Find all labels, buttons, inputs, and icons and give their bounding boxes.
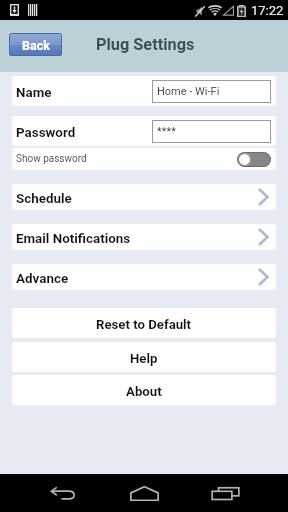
button[interactable]: Schedule xyxy=(12,184,276,210)
staticText: Home - Wi-Fi xyxy=(157,85,220,98)
staticText: Password xyxy=(16,125,76,141)
staticText: **** xyxy=(157,125,176,138)
button[interactable]: Back xyxy=(9,33,62,56)
button[interactable]: Email Notifications xyxy=(12,224,276,250)
staticText: Reset to Default xyxy=(96,317,192,332)
button[interactable]: Back xyxy=(39,474,87,512)
staticText: Plug Settings xyxy=(96,35,195,54)
staticText: Advance xyxy=(16,271,69,287)
button[interactable]: About xyxy=(12,375,276,405)
staticText: 17:22 xyxy=(251,3,284,18)
button[interactable]: Reset to Default xyxy=(12,308,276,338)
button[interactable]: Show password toggle xyxy=(237,152,271,167)
staticText: Schedule xyxy=(16,191,72,207)
staticText: Email Notifications xyxy=(16,231,131,247)
staticText: Back xyxy=(22,38,50,53)
staticText: Name xyxy=(16,85,52,101)
button[interactable]: Recent apps xyxy=(201,474,249,512)
button[interactable]: Advance xyxy=(12,264,276,290)
button[interactable]: Help xyxy=(12,342,276,372)
staticText: About xyxy=(126,384,162,399)
button[interactable]: Home xyxy=(120,474,168,512)
staticText: Show password xyxy=(16,153,87,165)
staticText: Help xyxy=(130,351,158,366)
